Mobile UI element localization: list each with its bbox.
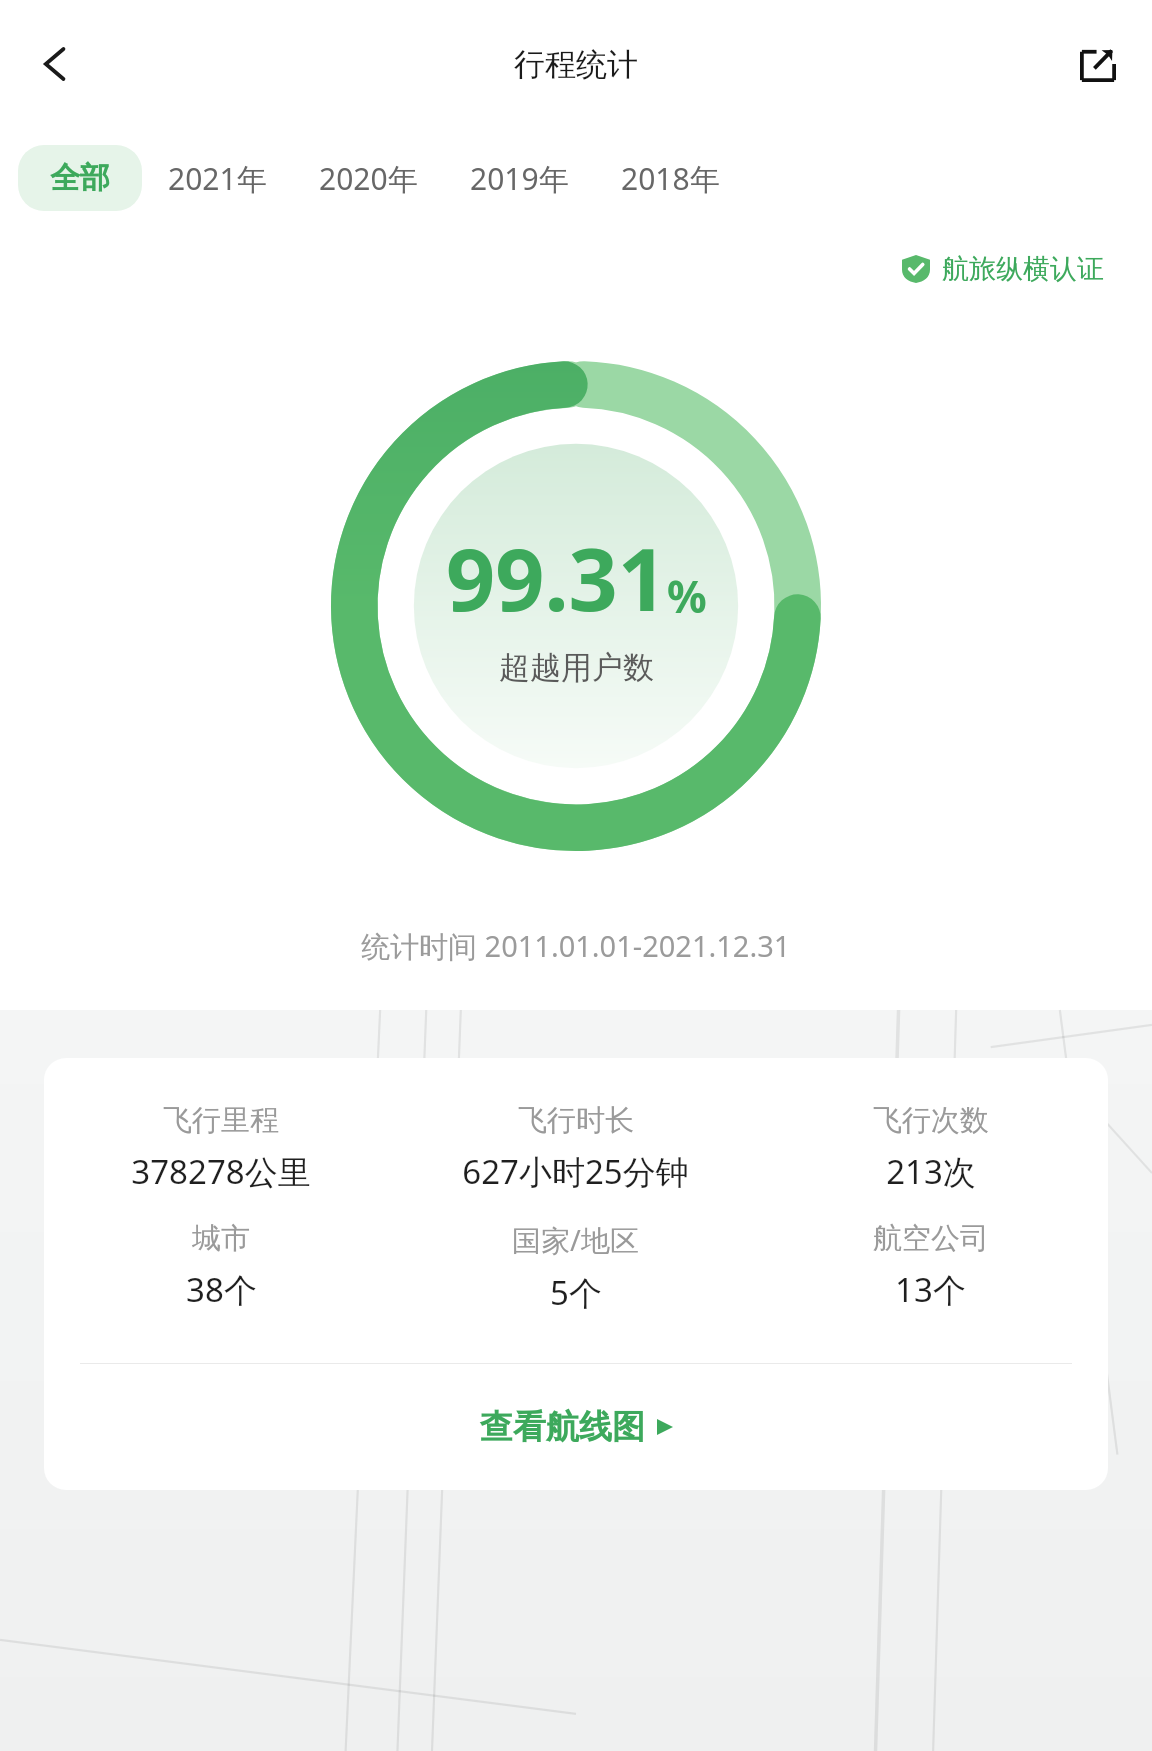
staticText: 627小时25分钟	[462, 1149, 689, 1194]
staticText: 378278公里	[131, 1149, 311, 1194]
staticText: 国家/地区	[512, 1220, 639, 1260]
staticText: 查看航线图	[480, 1406, 645, 1448]
staticText: %	[667, 566, 707, 626]
staticText: 2021年	[168, 158, 267, 199]
staticText: 飞行里程	[163, 1102, 279, 1139]
staticText: 38个	[186, 1267, 257, 1312]
staticText: 超越用户数	[499, 648, 654, 687]
staticText: 213次	[886, 1149, 976, 1194]
staticText: 航空公司	[873, 1220, 989, 1257]
staticText: 全部	[50, 159, 110, 197]
staticText: 航旅纵横认证	[942, 252, 1104, 286]
button[interactable]: 航旅纵横认证	[902, 252, 1104, 286]
button[interactable]: Back	[20, 28, 92, 100]
staticText: 统计时间 2011.01.01-2021.12.31	[361, 926, 791, 966]
button[interactable]: 查看航线图	[44, 1364, 1108, 1490]
staticText: 2018年	[621, 158, 720, 199]
staticText: 99.31	[446, 519, 667, 636]
button[interactable]: 2021年	[142, 144, 293, 213]
button[interactable]: 2020年	[293, 144, 444, 213]
button[interactable]: 全部	[18, 145, 142, 211]
staticText: 2019年	[470, 158, 569, 199]
staticText: 2020年	[319, 158, 418, 199]
staticText: 5个	[550, 1270, 602, 1315]
staticText: 城市	[192, 1220, 250, 1257]
button[interactable]: 2019年	[444, 144, 595, 213]
staticText: 飞行次数	[873, 1102, 989, 1139]
staticText: 13个	[895, 1267, 966, 1312]
staticText: 飞行时长	[518, 1102, 634, 1139]
staticText: 行程统计	[514, 45, 638, 84]
button[interactable]: 2018年	[595, 144, 746, 213]
button[interactable]: Share	[1062, 28, 1134, 100]
